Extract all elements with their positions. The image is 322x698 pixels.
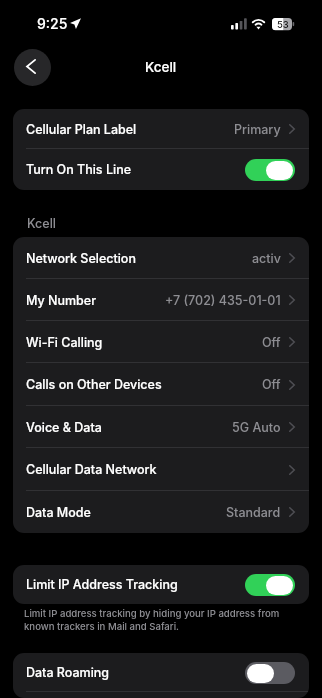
staticText: Data Roaming bbox=[26, 665, 110, 680]
staticText: +7 (702) 435-01-01 bbox=[165, 293, 281, 308]
staticText: Kcell bbox=[27, 216, 56, 231]
staticText: My Number bbox=[26, 293, 96, 308]
button[interactable]: My Number bbox=[13, 279, 309, 321]
button[interactable]: Network Selection bbox=[13, 237, 309, 279]
staticText: 5G Auto bbox=[232, 420, 281, 435]
staticText: Kcell bbox=[145, 59, 177, 75]
staticText: Voice & Data bbox=[26, 420, 102, 435]
button[interactable]: Wi-Fi Calling bbox=[13, 321, 309, 363]
staticText: Network Selection bbox=[26, 251, 136, 266]
staticText: activ bbox=[252, 251, 281, 266]
button[interactable]: Back bbox=[14, 49, 51, 86]
button[interactable]: On bbox=[245, 159, 295, 181]
button[interactable]: Turn On This Line bbox=[13, 149, 309, 190]
staticText: Limit IP address tracking by hiding your… bbox=[24, 608, 292, 632]
staticText: Standard bbox=[226, 505, 281, 520]
button[interactable]: Limit IP Address Tracking bbox=[13, 565, 309, 604]
button[interactable]: Calls on Other Devices bbox=[13, 363, 309, 406]
staticText: Off bbox=[262, 377, 281, 392]
staticText: 9:25 bbox=[37, 15, 68, 32]
button[interactable]: Data Roaming bbox=[13, 653, 309, 692]
staticText: Data Mode bbox=[26, 505, 91, 520]
staticText: Primary bbox=[234, 122, 281, 137]
button[interactable]: Cellular Data Network bbox=[13, 448, 309, 491]
button[interactable]: Cellular Plan Label bbox=[13, 109, 309, 149]
staticText: Turn On This Line bbox=[26, 162, 132, 177]
staticText: 53 bbox=[277, 19, 289, 30]
staticText: Cellular Plan Label bbox=[26, 122, 137, 137]
button[interactable]: Data Mode bbox=[13, 491, 309, 533]
staticText: Limit IP Address Tracking bbox=[26, 577, 178, 592]
staticText: Calls on Other Devices bbox=[26, 377, 162, 392]
button[interactable]: On bbox=[245, 574, 295, 596]
staticText: Off bbox=[262, 335, 281, 350]
button[interactable]: Voice & Data bbox=[13, 406, 309, 448]
staticText: Wi-Fi Calling bbox=[26, 335, 103, 350]
staticText: Cellular Data Network bbox=[26, 462, 157, 477]
button[interactable]: Off bbox=[245, 662, 295, 684]
